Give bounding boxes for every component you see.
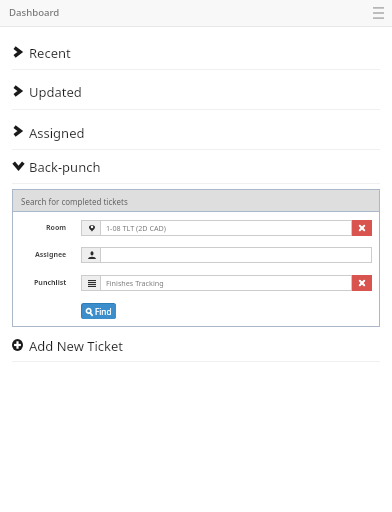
button[interactable]: Clear — [352, 275, 372, 291]
staticText: Recent — [29, 44, 71, 62]
staticText: Room — [46, 223, 67, 233]
button[interactable]: Updated — [0, 70, 392, 110]
button[interactable]: Find — [81, 303, 116, 319]
staticText: Add New Ticket — [29, 337, 124, 355]
staticText: Assigned — [29, 124, 85, 142]
staticText: Punchlist — [34, 278, 67, 288]
staticText: Search for completed tickets — [21, 196, 128, 207]
button[interactable]: Back-punch — [0, 150, 392, 184]
button[interactable]: Clear — [352, 220, 372, 236]
staticText: Updated — [29, 83, 82, 101]
button[interactable]: Recent — [0, 27, 392, 70]
staticText: Dashboard — [9, 6, 60, 19]
staticText: Finishes Tracking — [106, 278, 164, 288]
button[interactable]: Assigned — [0, 110, 392, 150]
staticText: 1-08 TLT (2D CAD) — [106, 223, 166, 233]
staticText: Find — [95, 306, 112, 317]
button[interactable]: Add New Ticket — [0, 328, 392, 362]
button[interactable]: Menu — [367, 1, 390, 26]
staticText: Back-punch — [29, 158, 101, 176]
staticText: Assignee — [35, 250, 67, 260]
